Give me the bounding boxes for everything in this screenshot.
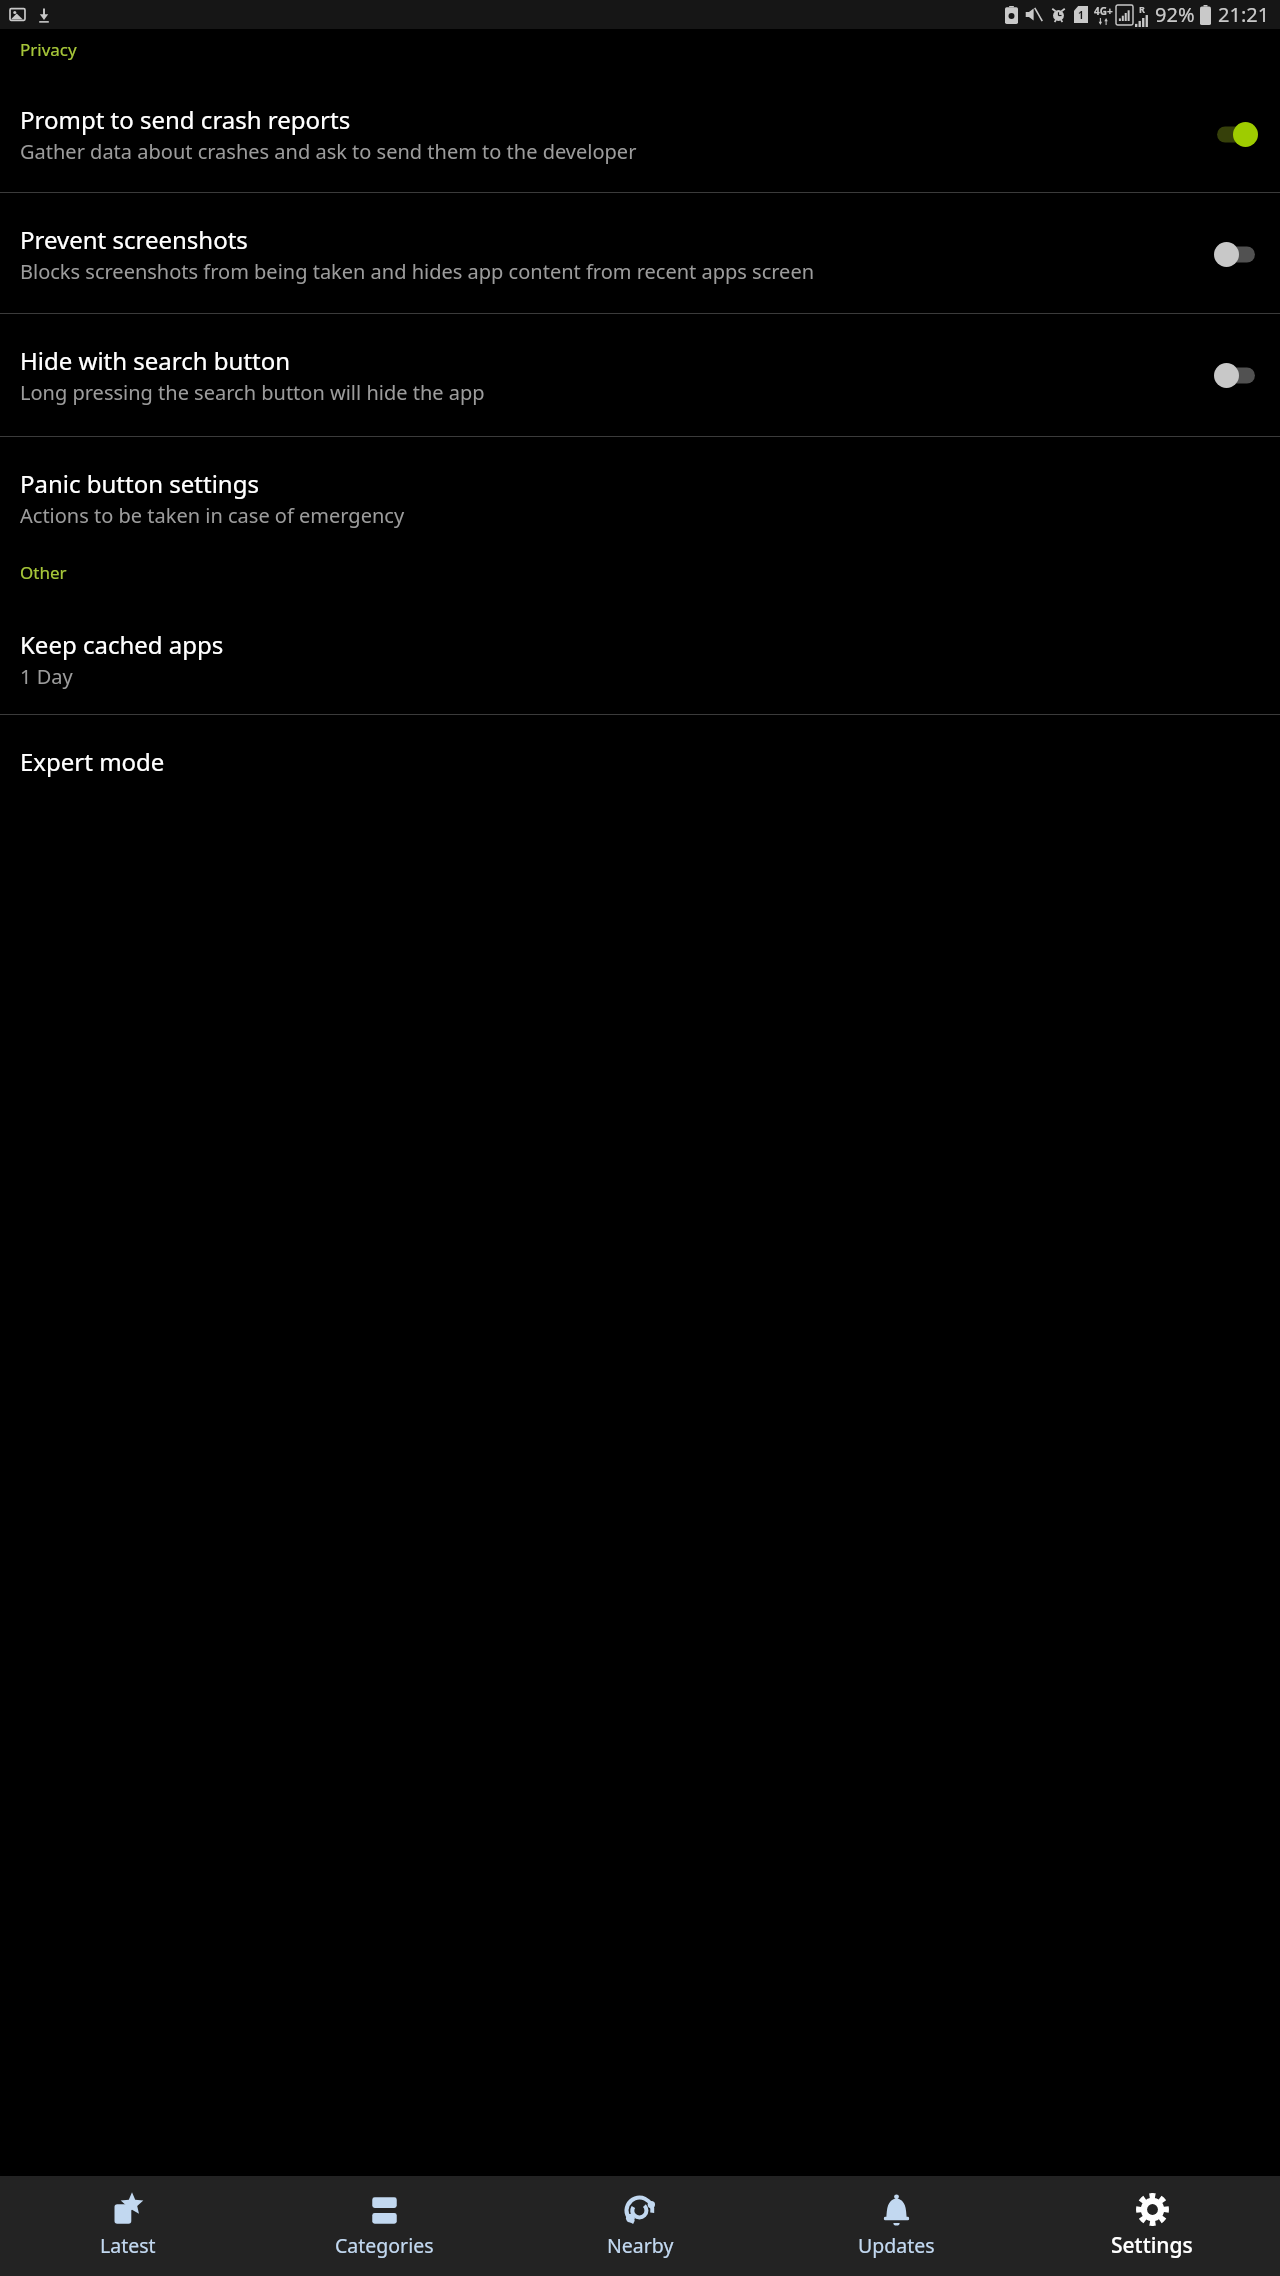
- button[interactable]: Prompt to send crash reports toggle: [1208, 116, 1264, 153]
- staticText: Keep cached apps: [20, 628, 224, 661]
- button[interactable]: Hide with search button toggle: [1208, 357, 1264, 394]
- button[interactable]: Keep cached apps: [0, 628, 1280, 714]
- staticText: Hide with search button: [20, 344, 291, 377]
- button[interactable]: Prompt to send crash reports: [0, 103, 1280, 192]
- button[interactable]: Nearby: [512, 2188, 768, 2264]
- button[interactable]: Prevent screenshots: [0, 193, 1280, 313]
- button[interactable]: Categories: [256, 2188, 512, 2264]
- staticText: Nearby: [607, 2232, 674, 2259]
- staticText: Blocks screenshots from being taken and …: [20, 258, 815, 285]
- staticText: 92%: [1155, 1, 1195, 28]
- staticText: 1 Day: [20, 663, 73, 690]
- staticText: Updates: [858, 2232, 935, 2259]
- staticText: Prevent screenshots: [20, 223, 248, 256]
- staticText: Privacy: [20, 38, 77, 61]
- staticText: 21:21: [1218, 1, 1270, 28]
- staticText: Settings: [1111, 2231, 1193, 2260]
- staticText: Actions to be taken in case of emergency: [20, 502, 405, 529]
- staticText: Long pressing the search button will hid…: [20, 379, 485, 406]
- staticText: Prompt to send crash reports: [20, 103, 351, 136]
- staticText: R: [1139, 3, 1145, 15]
- staticText: Expert mode: [20, 745, 165, 778]
- button[interactable]: Latest: [0, 2188, 256, 2264]
- button[interactable]: Panic button settings: [0, 437, 1280, 539]
- button[interactable]: Settings: [1024, 2187, 1280, 2265]
- button[interactable]: Hide with search button: [0, 314, 1280, 436]
- staticText: 4G+: [1094, 4, 1113, 18]
- button[interactable]: Updates: [768, 2188, 1024, 2264]
- staticText: 1: [1078, 8, 1084, 22]
- staticText: Other: [20, 561, 67, 584]
- button[interactable]: Expert mode: [0, 715, 1280, 778]
- button[interactable]: Prevent screenshots toggle: [1208, 236, 1264, 273]
- staticText: Gather data about crashes and ask to sen…: [20, 138, 637, 165]
- staticText: Categories: [335, 2232, 434, 2259]
- staticText: Panic button settings: [20, 467, 259, 500]
- staticText: Latest: [100, 2232, 156, 2259]
